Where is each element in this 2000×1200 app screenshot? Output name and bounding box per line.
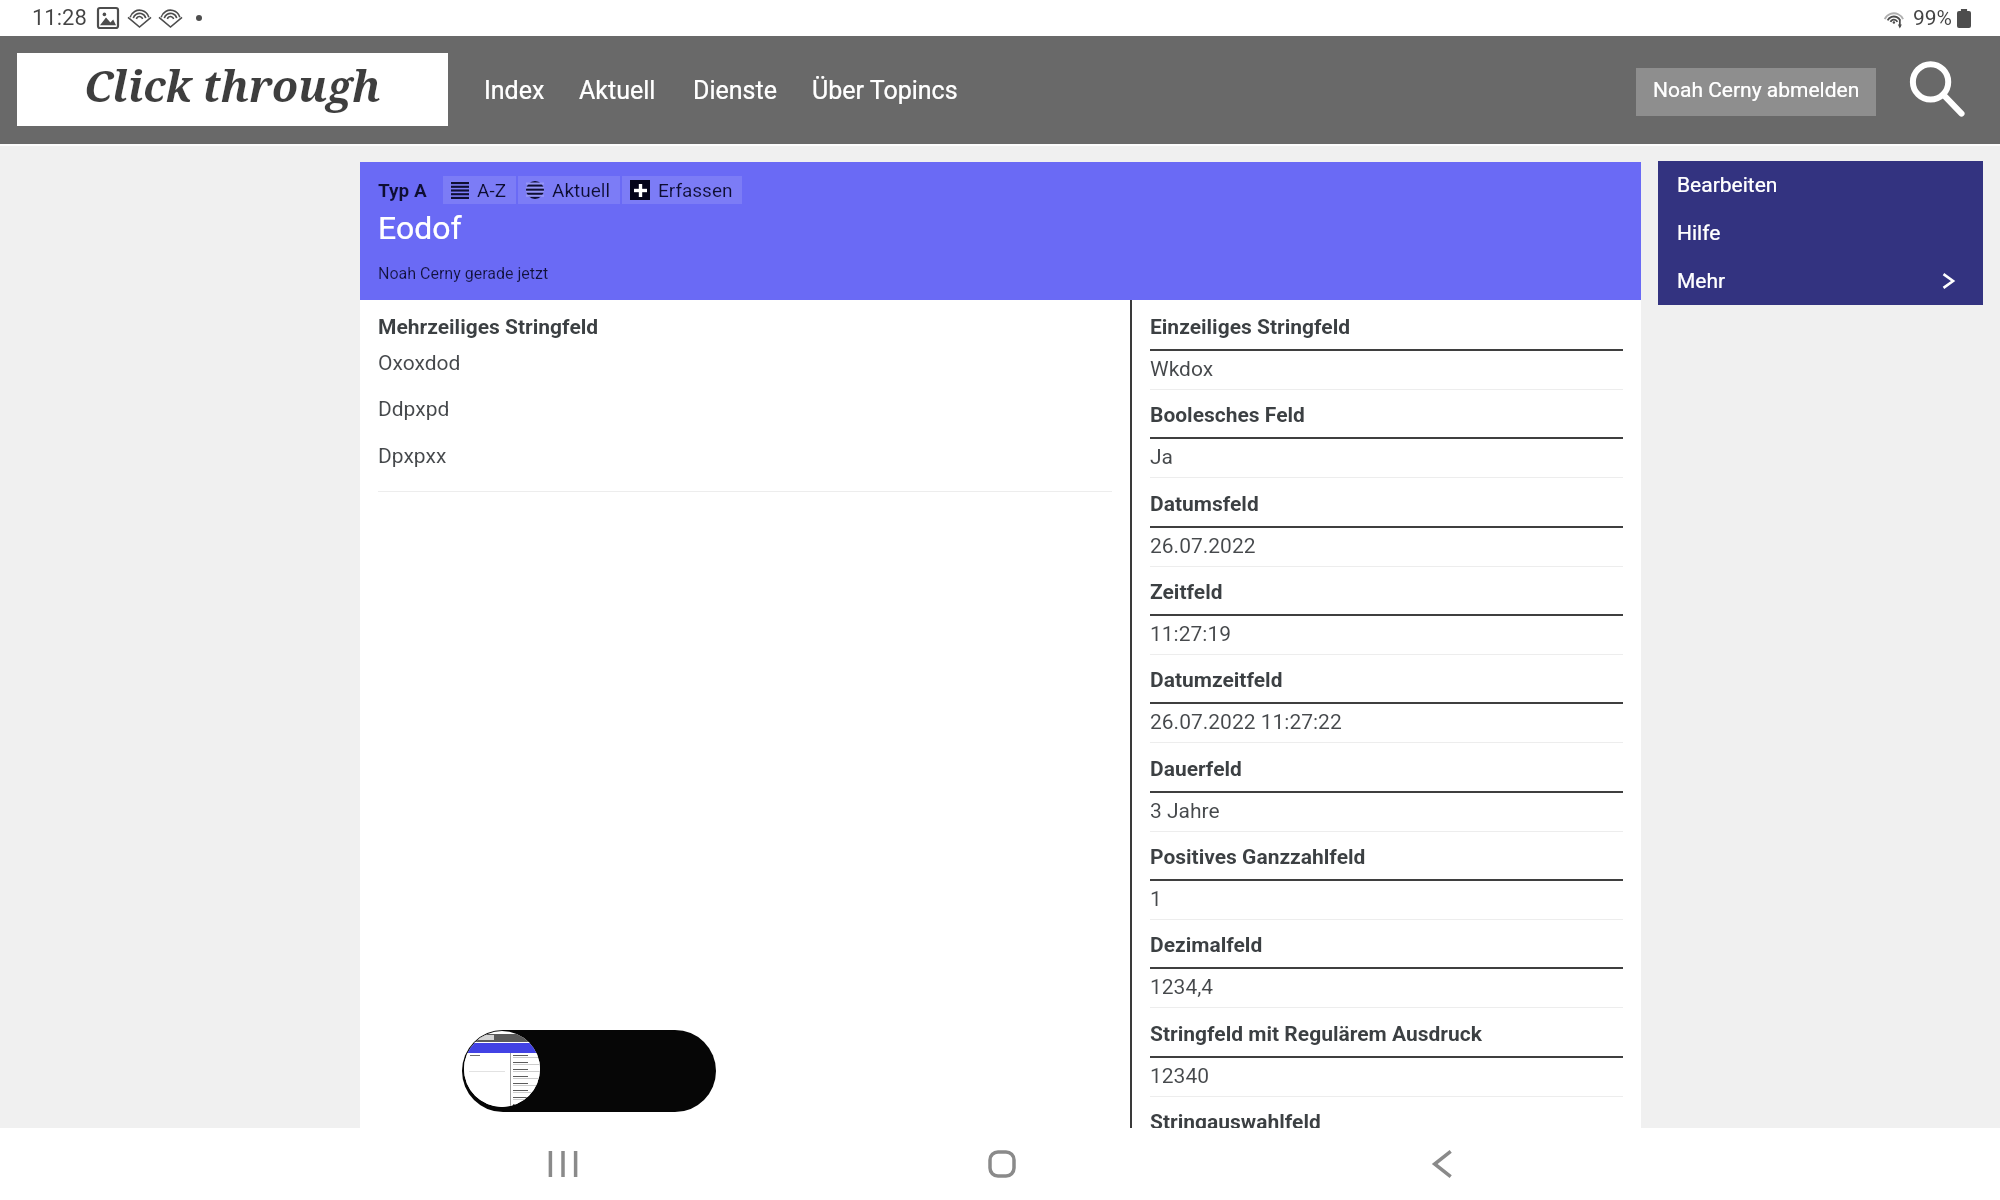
staticText: Dienste bbox=[693, 76, 777, 105]
staticText: Wkdox bbox=[1150, 357, 1214, 382]
button[interactable]: Dezimalfeld bbox=[1132, 918, 1641, 1006]
staticText: Dpxpxx bbox=[378, 444, 447, 469]
staticText: Einzeiliges Stringfeld bbox=[1150, 315, 1351, 340]
staticText: Eodof bbox=[378, 209, 462, 247]
staticText: Ddpxpd bbox=[378, 397, 450, 422]
staticText: Bearbeiten bbox=[1677, 173, 1778, 198]
button[interactable]: Zeitfeld bbox=[1132, 565, 1641, 653]
button[interactable]: Bearbeiten bbox=[1658, 161, 1983, 209]
button[interactable]: Dienste bbox=[685, 36, 785, 144]
staticText: Boolesches Feld bbox=[1150, 403, 1305, 428]
button[interactable]: A-Z bbox=[443, 176, 516, 204]
staticText: Noah Cerny gerade jetzt bbox=[378, 264, 549, 283]
button[interactable]: Datumsfeld bbox=[1132, 477, 1641, 565]
staticText: 3 Jahre bbox=[1150, 799, 1220, 824]
staticText: Datumsfeld bbox=[1150, 492, 1259, 517]
button[interactable]: Suchen bbox=[1903, 55, 1973, 125]
staticText: 26.07.2022 bbox=[1150, 534, 1256, 559]
staticText: Oxoxdod bbox=[378, 351, 461, 376]
staticText: Mehr bbox=[1677, 269, 1726, 294]
staticText: 1 bbox=[1150, 887, 1162, 912]
staticText: Mehrzeiliges Stringfeld bbox=[378, 315, 599, 340]
button[interactable]: Stringfeld mit Regulärem Ausdruck bbox=[1132, 1007, 1641, 1095]
button[interactable]: Letzte Apps bbox=[463, 1128, 663, 1200]
button[interactable]: Mehr bbox=[1658, 257, 1983, 305]
button[interactable]: Startseite bbox=[902, 1128, 1102, 1200]
button[interactable]: Click through bbox=[17, 53, 448, 126]
button[interactable]: Dauerfeld bbox=[1132, 742, 1641, 830]
staticText: Über Topincs bbox=[812, 76, 958, 105]
staticText: Stringauswahlfeld bbox=[1150, 1110, 1321, 1135]
staticText: Index bbox=[484, 76, 545, 105]
staticText: Zeitfeld bbox=[1150, 580, 1223, 605]
staticText: 99% bbox=[1913, 6, 1952, 31]
staticText: Aktuell bbox=[579, 76, 656, 105]
button[interactable]: Über Topincs bbox=[804, 36, 966, 144]
button[interactable]: Datumzeitfeld bbox=[1132, 653, 1641, 741]
staticText: 26.07.2022 11:27:22 bbox=[1150, 710, 1342, 735]
staticText: 11:28 bbox=[32, 5, 87, 31]
button[interactable]: Aktuell bbox=[571, 36, 664, 144]
staticText: Datumzeitfeld bbox=[1150, 668, 1283, 693]
button[interactable]: Vorschau bbox=[462, 1030, 716, 1112]
staticText: Click through bbox=[84, 56, 381, 115]
staticText: A-Z bbox=[477, 179, 507, 201]
staticText: Typ A bbox=[378, 179, 427, 201]
staticText: Ja bbox=[1150, 445, 1174, 470]
button[interactable]: Noah Cerny abmelden bbox=[1636, 68, 1876, 116]
staticText: Dezimalfeld bbox=[1150, 933, 1263, 958]
staticText: Hilfe bbox=[1677, 221, 1721, 246]
staticText: Stringfeld mit Regulärem Ausdruck bbox=[1150, 1022, 1482, 1047]
staticText: 12340 bbox=[1150, 1064, 1210, 1089]
button[interactable]: Boolesches Feld bbox=[1132, 388, 1641, 476]
button[interactable]: Positives Ganzzahlfeld bbox=[1132, 830, 1641, 918]
staticText: Positives Ganzzahlfeld bbox=[1150, 845, 1366, 870]
button[interactable]: Index bbox=[476, 36, 553, 144]
staticText: Noah Cerny abmelden bbox=[1653, 78, 1860, 103]
button[interactable]: Einzeiliges Stringfeld bbox=[1132, 300, 1641, 388]
button[interactable]: Zurück bbox=[1343, 1128, 1543, 1200]
staticText: Aktuell bbox=[552, 179, 611, 201]
staticText: 1234,4 bbox=[1150, 975, 1214, 1000]
staticText: Erfassen bbox=[658, 179, 733, 201]
button[interactable]: Hilfe bbox=[1658, 209, 1983, 257]
button[interactable]: Aktuell bbox=[518, 176, 620, 204]
staticText: Dauerfeld bbox=[1150, 757, 1242, 782]
staticText: 11:27:19 bbox=[1150, 622, 1231, 647]
button[interactable]: Erfassen bbox=[622, 176, 742, 204]
